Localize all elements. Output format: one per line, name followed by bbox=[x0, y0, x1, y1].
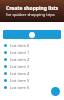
button[interactable] bbox=[3, 30, 61, 39]
staticText: List item 3 bbox=[10, 64, 30, 69]
button[interactable]: List item 5 bbox=[0, 77, 64, 84]
staticText: List item 0 bbox=[10, 43, 30, 48]
button[interactable]: List item 2 bbox=[0, 56, 64, 63]
staticText: List item 1 bbox=[10, 50, 30, 55]
staticText: List item 5 bbox=[10, 78, 30, 83]
button[interactable]: List item 0 bbox=[0, 42, 64, 49]
staticText: List item 4 bbox=[10, 71, 30, 76]
staticText: Create shopping lists bbox=[6, 5, 59, 12]
button[interactable]: List item 4 bbox=[0, 70, 64, 77]
staticText: List item 2 bbox=[10, 57, 30, 62]
button[interactable]: List item 6 bbox=[0, 84, 64, 91]
button[interactable]: List item 1 bbox=[0, 49, 64, 56]
button[interactable]: List item 3 bbox=[0, 63, 64, 70]
button[interactable]: Add bbox=[51, 87, 60, 96]
staticText: List item 6 bbox=[10, 85, 30, 90]
staticText: for quicker shopping trips bbox=[6, 12, 55, 17]
